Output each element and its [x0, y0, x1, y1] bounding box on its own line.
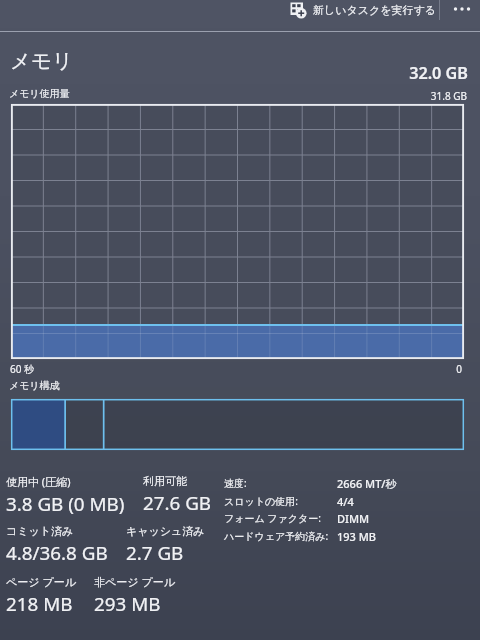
staticText: 27.6 GB — [143, 490, 212, 516]
staticText: キャッシュ済み — [126, 524, 205, 538]
button[interactable]: Memory usage graph — [11, 104, 464, 359]
staticText: 293 MB — [94, 591, 161, 617]
staticText: ハードウェア予約済み: — [224, 529, 329, 543]
staticText: 非ページ プール — [94, 574, 175, 589]
staticText: 218 MB — [6, 591, 73, 617]
staticText: フォーム ファクター: — [224, 511, 321, 525]
staticText: DIMM — [337, 511, 370, 526]
button[interactable]: 新しいタスクを実行する — [285, 0, 444, 20]
staticText: スロットの使用: — [224, 494, 298, 508]
button[interactable]: More options — [447, 0, 479, 20]
staticText: メモリ — [10, 48, 73, 74]
staticText: 速度: — [224, 476, 247, 490]
staticText: 3.8 GB (0 MB) — [6, 491, 125, 517]
staticText: メモリ構成 — [9, 379, 60, 392]
staticText: 32.0 GB — [340, 62, 468, 84]
button[interactable]: Memory composition — [11, 399, 464, 450]
staticText: コミット済み — [6, 524, 74, 538]
staticText: 新しいタスクを実行する — [313, 3, 437, 17]
staticText: 193 MB — [337, 529, 377, 544]
staticText: ページ プール — [6, 574, 76, 589]
staticText: メモリ使用量 — [9, 87, 70, 100]
staticText: 2.7 GB — [126, 540, 184, 566]
staticText: 4.8/36.8 GB — [6, 540, 108, 566]
staticText: 利用可能 — [143, 474, 187, 488]
staticText: 使用中 (圧縮) — [6, 474, 71, 489]
staticText: 60 秒 — [10, 362, 35, 376]
staticText: 31.8 GB — [360, 89, 467, 103]
staticText: 0 — [438, 362, 462, 376]
staticText: 2666 MT/秒 — [337, 476, 397, 491]
staticText: 4/4 — [337, 494, 354, 509]
